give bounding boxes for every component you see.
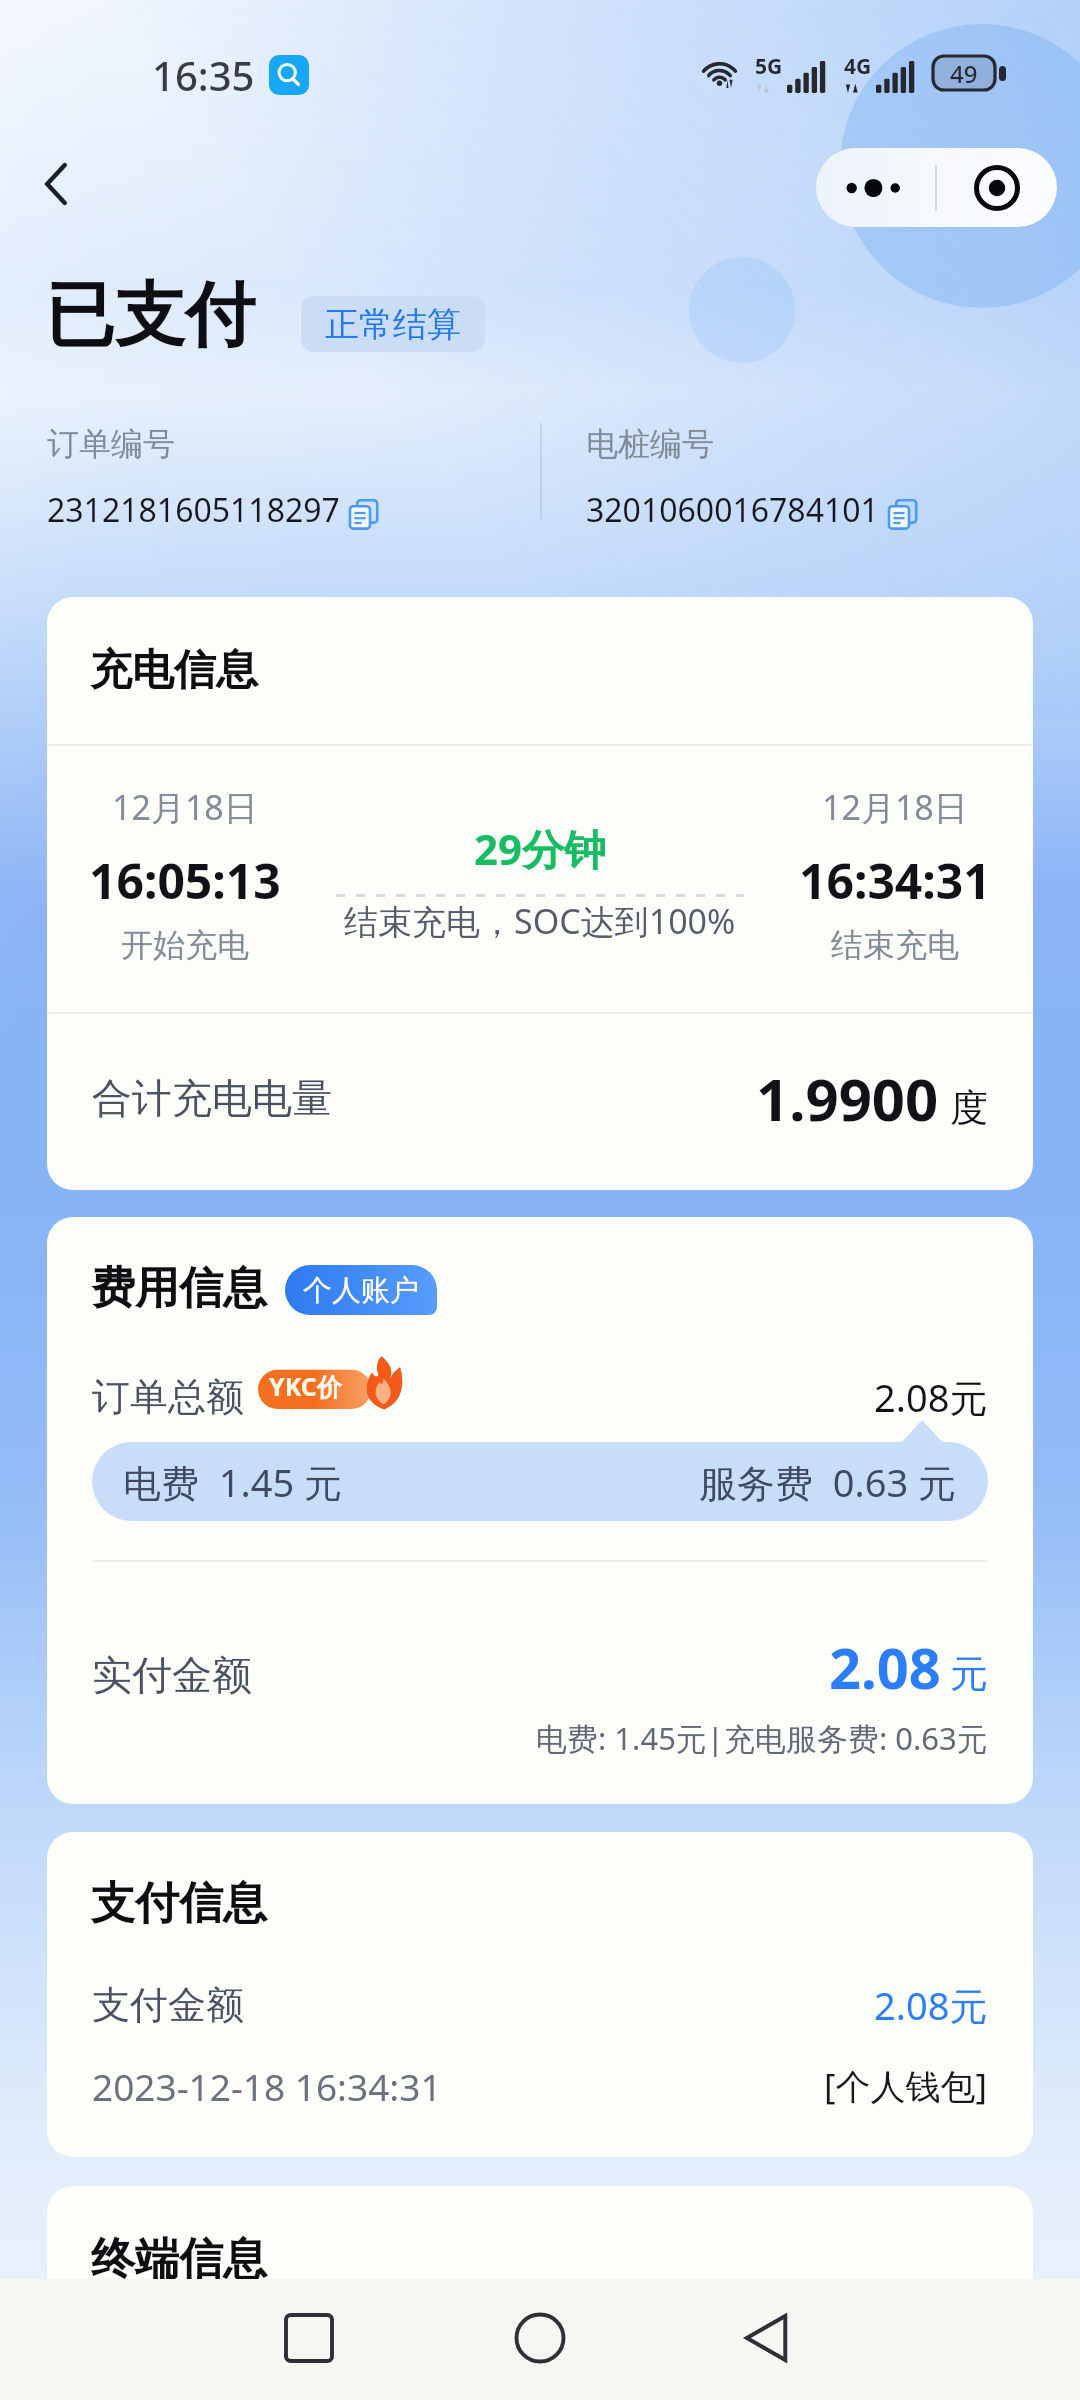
- staticText: 费用信息: [91, 1261, 267, 1316]
- staticText: 支付金额: [92, 1981, 244, 2029]
- staticText: 元: [950, 1650, 988, 1698]
- staticText: 12月18日: [822, 784, 968, 830]
- button[interactable]: Copy: [883, 495, 923, 535]
- staticText: 2023-12-18 16:34:31: [92, 2061, 442, 2111]
- button[interactable]: Close mini program: [937, 148, 1057, 227]
- button[interactable]: Home: [490, 2288, 590, 2388]
- staticText: [个人钱包]: [824, 2062, 988, 2110]
- staticText: 支付信息: [91, 1876, 267, 1931]
- button[interactable]: Back: [718, 2288, 818, 2388]
- staticText: 订单编号: [47, 424, 175, 464]
- staticText: 结束充电，SOC达到100%: [344, 898, 736, 944]
- button[interactable]: Back: [20, 148, 92, 220]
- staticText: 16:35: [152, 48, 255, 102]
- staticText: 4G: [844, 52, 872, 81]
- staticText: 充电信息: [90, 644, 258, 697]
- staticText: 已支付: [45, 272, 255, 360]
- staticText: 订单总额: [92, 1373, 244, 1421]
- staticText: 实付金额: [92, 1650, 252, 1700]
- staticText: 电费 1.45 元: [123, 1456, 343, 1508]
- staticText: YKC价: [269, 1369, 342, 1403]
- staticText: 结束充电: [831, 925, 959, 965]
- button[interactable]: Copy: [344, 495, 384, 535]
- button[interactable]: Recents: [259, 2288, 359, 2388]
- button[interactable]: More options: [816, 148, 935, 227]
- staticText: 正常结算: [325, 303, 461, 346]
- staticText: 1.9900: [756, 1059, 939, 1138]
- staticText: 29分钟: [474, 820, 607, 877]
- staticText: 16:05:13: [89, 848, 281, 913]
- staticText: 终端信息: [91, 2232, 267, 2287]
- staticText: 电桩编号: [586, 424, 714, 464]
- staticText: 2312181605118297: [47, 488, 340, 532]
- staticText: 2.08: [829, 1629, 941, 1705]
- staticText: 个人账户: [303, 1272, 419, 1309]
- staticText: 49: [950, 57, 978, 90]
- staticText: 5G: [755, 52, 783, 81]
- staticText: 开始充电: [121, 925, 249, 965]
- staticText: 2.08元: [874, 1979, 988, 2031]
- staticText: 服务费 0.63 元: [699, 1456, 957, 1508]
- staticText: 合计充电电量: [92, 1073, 332, 1123]
- staticText: 电费: 1.45元|充电服务费: 0.63元: [536, 1717, 988, 1759]
- staticText: 16:34:31: [799, 848, 991, 913]
- staticText: 12月18日: [112, 784, 258, 830]
- staticText: 3201060016784101: [586, 488, 879, 532]
- staticText: 2.08元: [874, 1371, 988, 1423]
- staticText: 度: [950, 1084, 988, 1132]
